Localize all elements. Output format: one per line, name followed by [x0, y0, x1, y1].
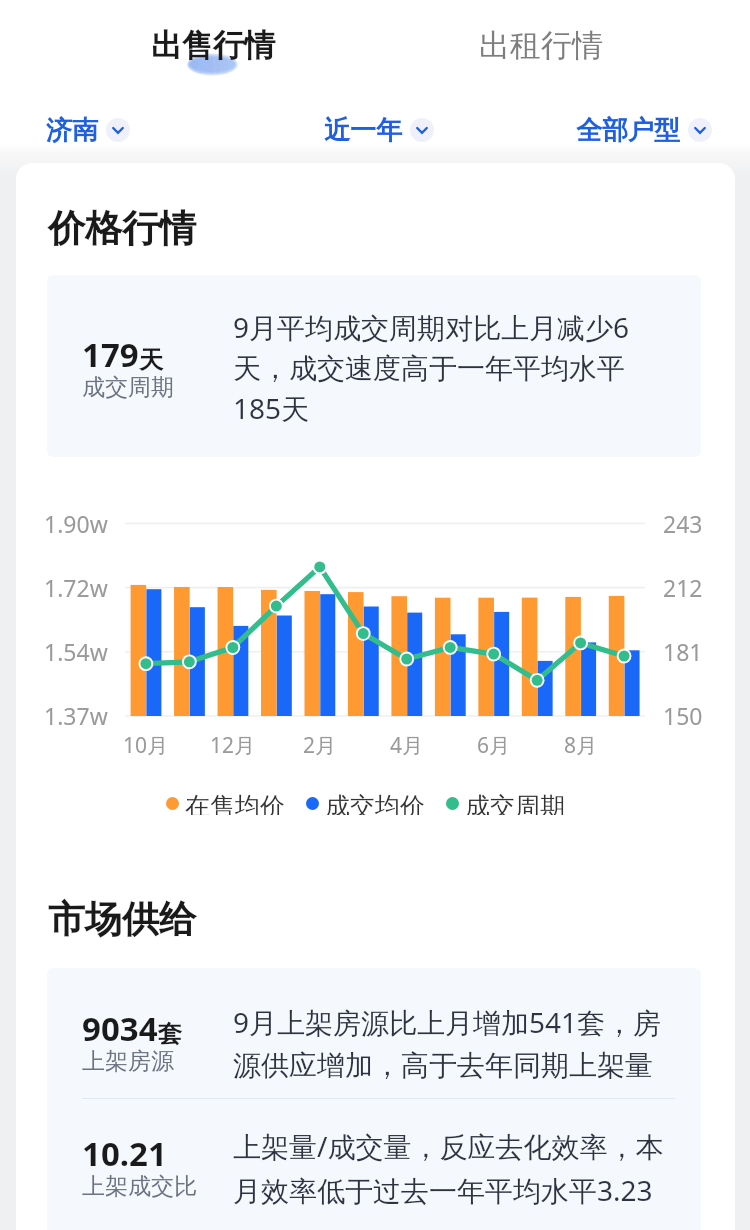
- staticText: 9月平均成交周期对比上月减少6天，成交速度高于一年平均水平185天: [233, 308, 643, 428]
- other: 展开筛选: [410, 118, 434, 142]
- staticText: 1.90w: [44, 508, 108, 539]
- staticText: 150: [663, 700, 703, 731]
- button[interactable]: 成交均价: [306, 791, 425, 815]
- staticText: 套: [158, 1019, 182, 1049]
- staticText: 4月: [390, 731, 424, 760]
- staticText: 10月: [123, 731, 169, 760]
- button[interactable]: 全部户型: [576, 104, 712, 156]
- staticText: 1.72w: [44, 572, 108, 603]
- other: 展开筛选: [688, 118, 712, 142]
- staticText: 在售均价: [185, 791, 285, 815]
- staticText: 近一年: [324, 114, 402, 147]
- button[interactable]: 济南: [46, 104, 130, 156]
- staticText: 243: [663, 508, 703, 539]
- staticText: 成交周期: [465, 791, 565, 815]
- staticText: 全部户型: [576, 114, 680, 147]
- staticText: 出售行情: [151, 26, 275, 65]
- staticText: 181: [663, 636, 703, 667]
- staticText: 价格行情: [48, 205, 196, 252]
- staticText: 12月: [210, 731, 256, 760]
- staticText: 10.21: [82, 1131, 167, 1176]
- staticText: 成交周期: [82, 373, 174, 402]
- staticText: 9月上架房源比上月增加541套，房源供应增加，高于去年同期上架量: [233, 1003, 678, 1084]
- staticText: 济南: [46, 114, 98, 147]
- staticText: 9034: [82, 1006, 158, 1051]
- staticText: 市场供给: [48, 896, 196, 943]
- button[interactable]: [47, 1099, 701, 1230]
- staticText: 上架房源: [82, 1047, 174, 1076]
- staticText: 上架成交比: [82, 1172, 197, 1201]
- staticText: 成交均价: [325, 791, 425, 815]
- other: 展开筛选: [106, 118, 130, 142]
- staticText: 8月: [564, 731, 598, 760]
- button[interactable]: 近一年: [324, 104, 434, 156]
- button[interactable]: [47, 968, 701, 1098]
- staticText: 上架量/成交量，反应去化效率，本月效率低于过去一年平均水平3.23: [233, 1127, 678, 1209]
- staticText: 212: [663, 572, 703, 603]
- staticText: 179: [82, 332, 139, 377]
- staticText: 1.37w: [44, 700, 108, 731]
- button[interactable]: 在售均价: [166, 791, 285, 815]
- staticText: 1.54w: [44, 636, 108, 667]
- button[interactable]: 出售行情: [130, 4, 295, 80]
- button[interactable]: 成交周期: [446, 791, 565, 815]
- staticText: 2月: [303, 731, 337, 760]
- staticText: 出租行情: [479, 26, 603, 65]
- button[interactable]: 出租行情: [458, 4, 623, 80]
- staticText: 6月: [477, 731, 511, 760]
- staticText: 天: [139, 345, 163, 375]
- button[interactable]: [47, 275, 701, 457]
